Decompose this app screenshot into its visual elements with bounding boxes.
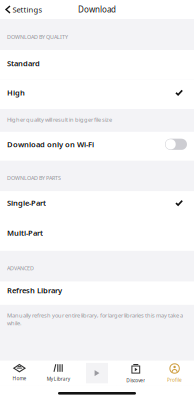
button[interactable]: Discover (116, 361, 155, 386)
staticText: Home (12, 375, 26, 382)
staticText: Standard (7, 58, 40, 69)
button[interactable]: Single-Part (0, 191, 194, 221)
button[interactable]: Now Playing (78, 361, 116, 386)
button[interactable]: Refresh Library (0, 281, 194, 305)
staticText: High (7, 87, 25, 98)
staticText: My Library (47, 376, 70, 382)
button[interactable]: Profile (155, 361, 194, 386)
staticText: Manually refresh your entire library, fo… (7, 311, 183, 327)
staticText: DOWNLOAD BY QUALITY (7, 33, 68, 40)
staticText: Discover (126, 377, 145, 384)
button[interactable]: Multi-Part (0, 221, 194, 251)
button[interactable]: Settings (0, 0, 49, 19)
staticText: ADVANCED (7, 265, 34, 272)
staticText: DOWNLOAD BY PARTS (7, 174, 61, 182)
staticText: Download only on Wi-Fi (7, 139, 94, 149)
staticText: Higher quality will result in bigger fil… (7, 116, 112, 123)
staticText: Download (78, 4, 116, 15)
button[interactable]: My Library (39, 361, 78, 386)
button[interactable]: Standard (0, 50, 194, 80)
button[interactable]: Download only on Wi-Fi (0, 132, 194, 161)
staticText: Settings (13, 4, 43, 15)
staticText: Multi-Part (7, 228, 43, 238)
button[interactable]: High (0, 80, 194, 109)
staticText: Refresh Library (7, 285, 62, 296)
staticText: Profile (167, 377, 182, 383)
staticText: Single-Part (7, 198, 46, 208)
button[interactable]: Home (0, 361, 39, 386)
